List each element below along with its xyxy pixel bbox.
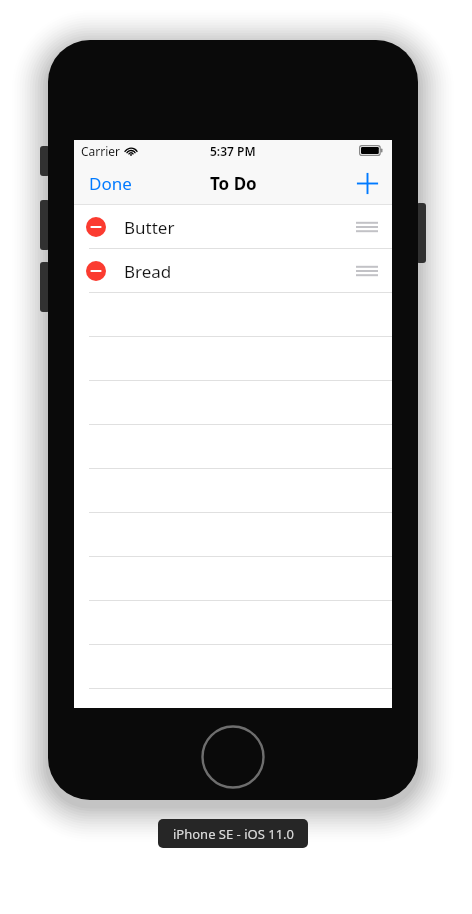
staticText: Butter bbox=[124, 216, 175, 239]
staticText: Carrier bbox=[81, 143, 121, 159]
staticText: To Do bbox=[210, 172, 257, 195]
button[interactable]: Done bbox=[74, 162, 147, 205]
button[interactable]: Reorder Butter bbox=[356, 219, 378, 235]
button[interactable]: Add item bbox=[343, 164, 392, 203]
button[interactable]: Reorder Bread bbox=[356, 263, 378, 279]
button[interactable]: Delete Butter bbox=[86, 217, 106, 237]
staticText: Bread bbox=[124, 260, 172, 283]
staticText: iPhone SE - iOS 11.0 bbox=[173, 825, 294, 843]
button[interactable]: Delete Bread bbox=[74, 249, 392, 293]
staticText: Done bbox=[89, 172, 132, 195]
staticText: 5:37 PM bbox=[210, 143, 256, 159]
button[interactable]: Delete Bread bbox=[86, 261, 106, 281]
button[interactable]: Delete Butter bbox=[74, 205, 392, 249]
button[interactable]: Home bbox=[201, 725, 265, 789]
